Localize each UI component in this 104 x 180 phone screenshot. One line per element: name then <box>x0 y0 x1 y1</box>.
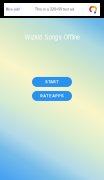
button[interactable]: Advertisement <box>0 0 104 18</box>
staticText: RATE APPS <box>40 94 64 98</box>
button[interactable]: START <box>32 77 72 87</box>
staticText: START <box>45 80 59 84</box>
staticText: This is a 320x50 test ad <box>35 8 74 11</box>
staticText: Wizkid Songs Offline <box>24 34 79 41</box>
staticText: Nice job! <box>6 8 20 11</box>
button[interactable]: RATE APPS <box>32 91 72 101</box>
